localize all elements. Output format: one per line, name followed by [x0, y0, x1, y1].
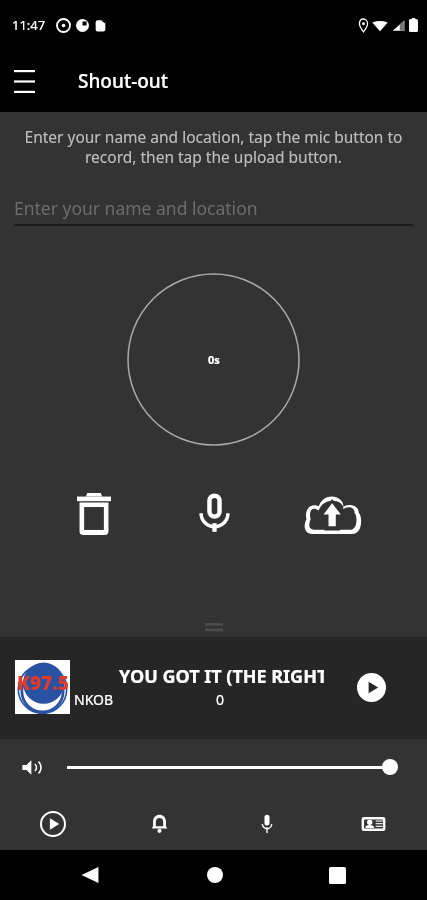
button[interactable]: Recents — [313, 859, 362, 891]
staticText: 0s — [208, 352, 220, 367]
button[interactable]: Back — [65, 859, 114, 891]
button[interactable]: Upload — [304, 485, 362, 543]
button[interactable]: Record — [185, 485, 243, 543]
button[interactable]: Menu — [1, 58, 47, 104]
button[interactable]: Volume — [14, 749, 50, 785]
staticText: 11:47 — [12, 16, 46, 34]
staticText: 0 — [216, 690, 225, 709]
staticText: Enter your name and location — [14, 196, 258, 220]
button[interactable]: Volume level — [382, 759, 398, 775]
staticText: NKOB — [74, 690, 114, 709]
button[interactable]: Play — [348, 664, 394, 710]
button[interactable]: Delete — [65, 485, 123, 543]
button[interactable]: Play — [0, 797, 106, 850]
staticText: Shout-out — [78, 68, 169, 94]
staticText: K97.5 — [17, 670, 69, 696]
button[interactable]: Home — [190, 859, 239, 891]
button[interactable]: Expand player — [199, 617, 229, 637]
staticText: Enter your name and location, tap the mi… — [8, 126, 419, 168]
button[interactable]: Contact — [320, 797, 427, 850]
button[interactable]: Alerts — [106, 797, 213, 850]
staticText: YOU GOT IT (THE RIGHT STUFF) — [119, 664, 324, 686]
button[interactable]: Record — [213, 797, 320, 850]
